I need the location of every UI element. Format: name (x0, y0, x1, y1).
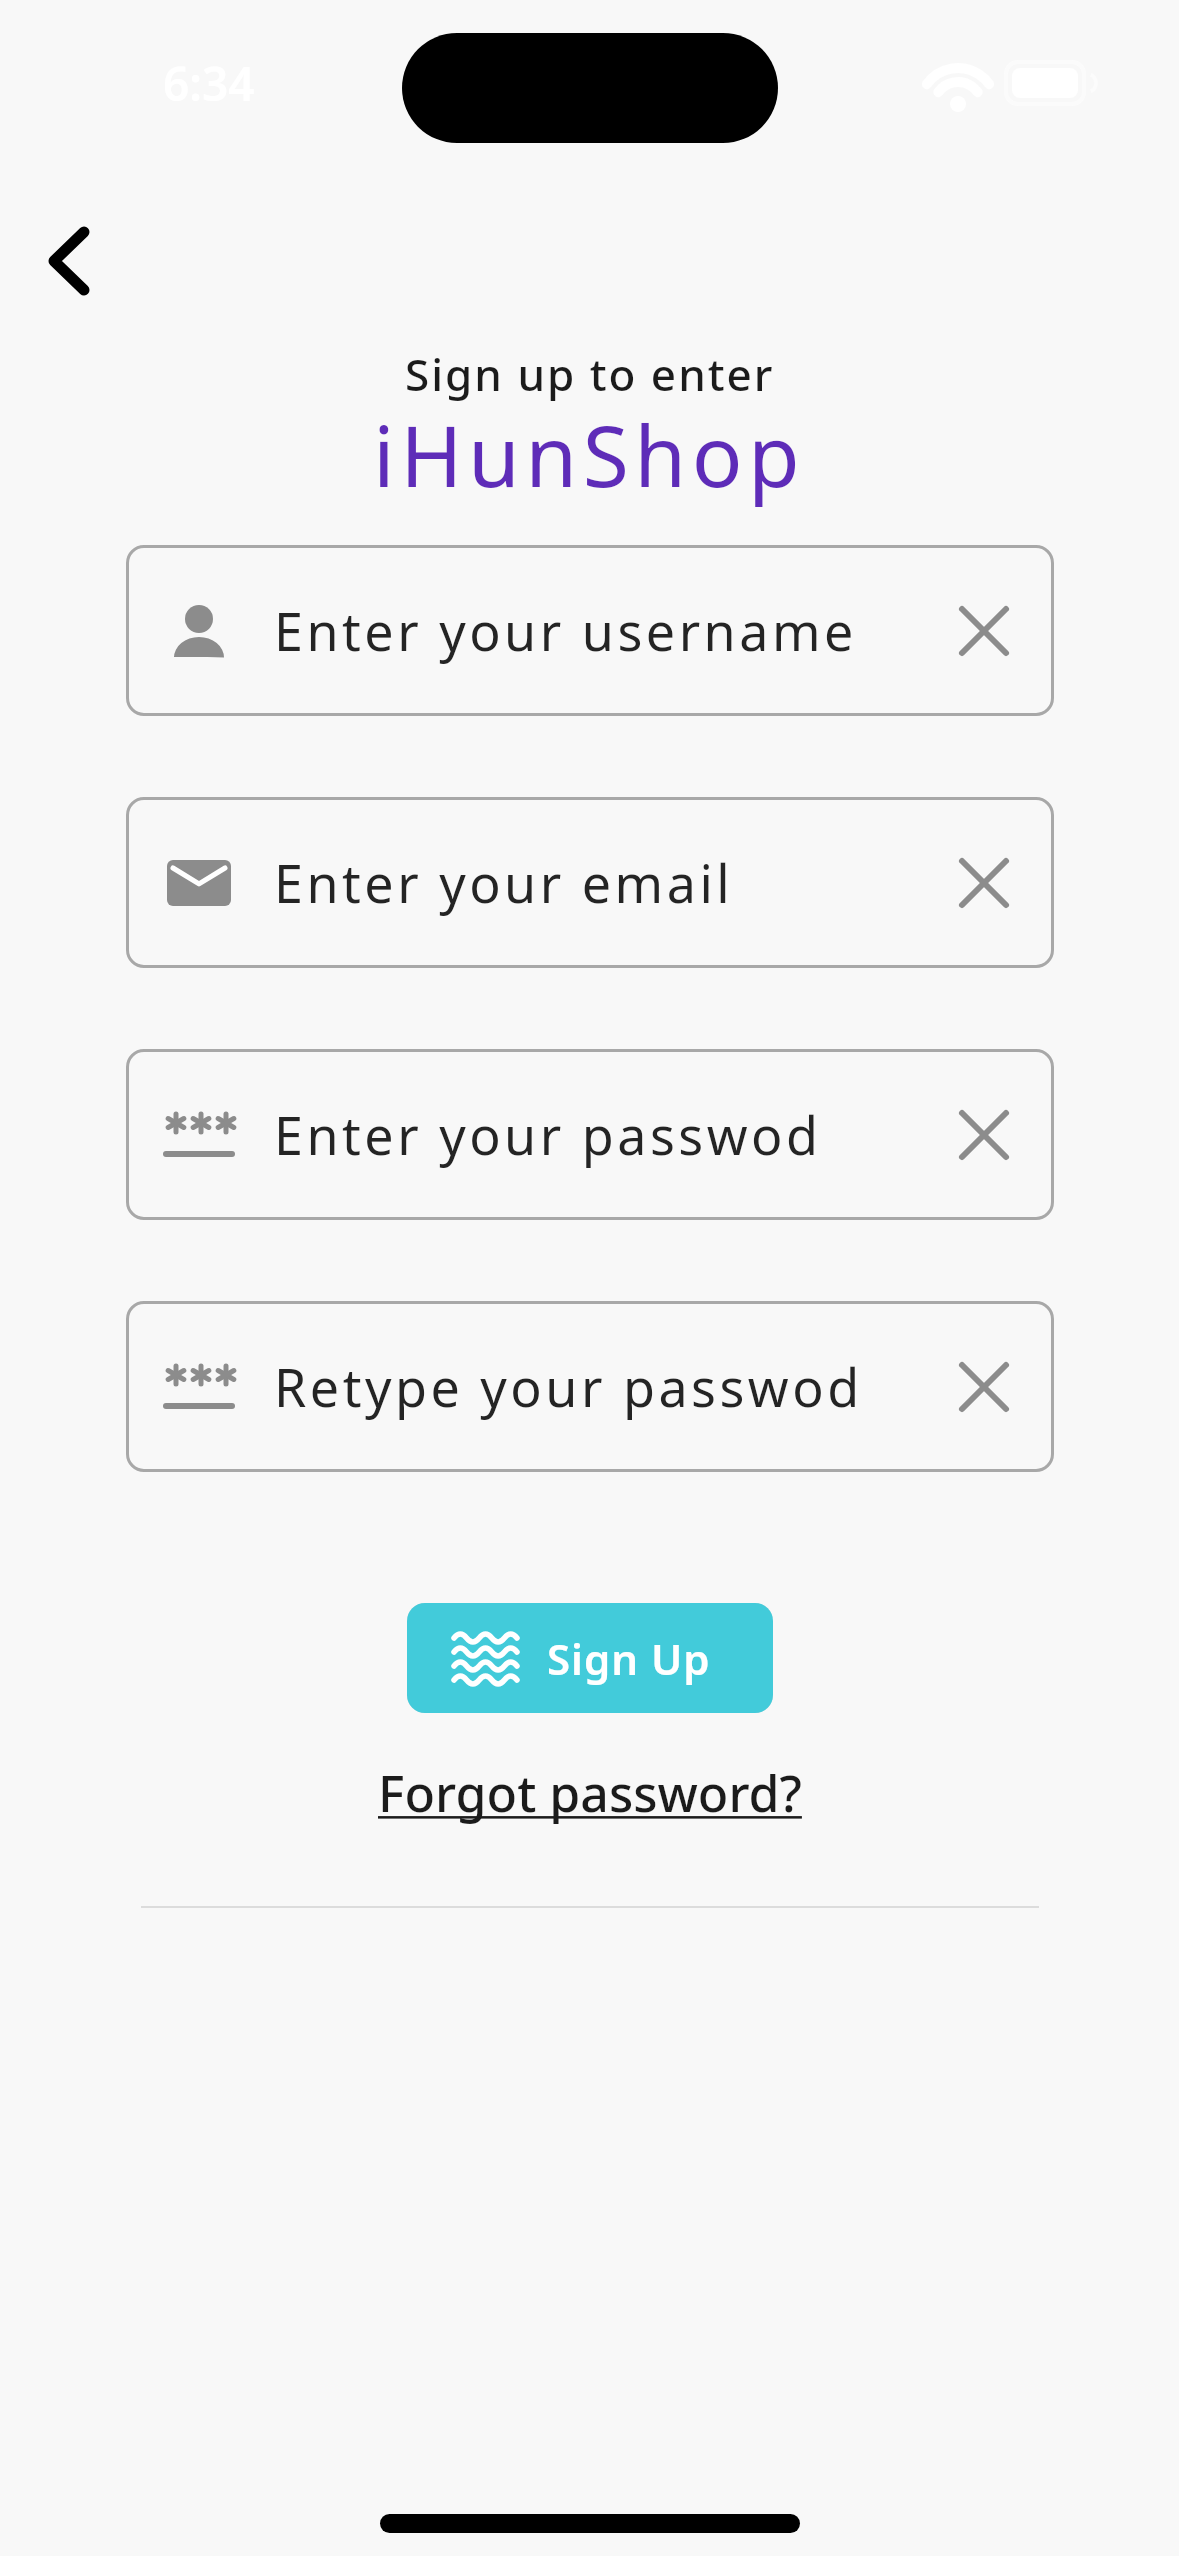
staticText: Retype your passwod (274, 1351, 863, 1422)
staticText: Enter your passwod (274, 1099, 822, 1170)
staticText: Sign Up (547, 1630, 711, 1687)
staticText: iHunShop (373, 397, 806, 511)
staticText: Forgot password? (378, 1759, 802, 1827)
staticText: Enter your username (274, 595, 857, 666)
staticText: Sign up to enter (405, 344, 775, 404)
staticText: Enter your email (274, 847, 734, 918)
